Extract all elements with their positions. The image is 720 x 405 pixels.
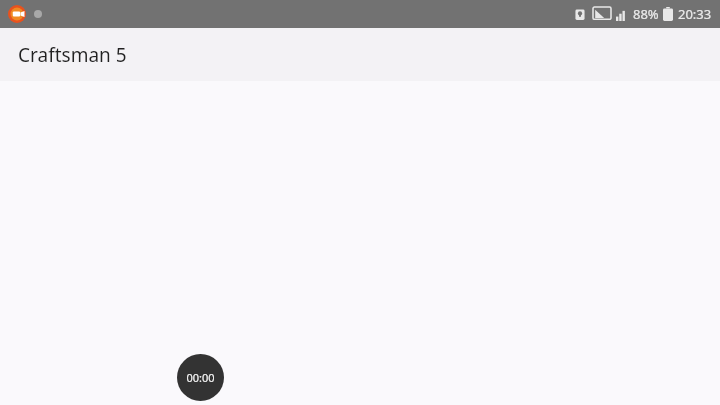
staticText: 00:00 [186,370,215,385]
staticText: 20:33 [678,5,712,23]
staticText: Craftsman 5 [18,42,127,68]
staticText: 88% [633,5,659,23]
button[interactable]: Timer 00:00 [177,354,224,401]
